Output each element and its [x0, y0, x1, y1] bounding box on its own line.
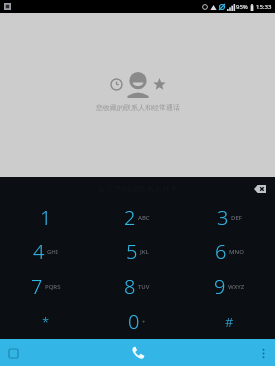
button[interactable]: 3 [183, 200, 275, 234]
staticText: 9 [214, 273, 226, 300]
staticText: + [142, 318, 146, 326]
button[interactable]: 6 [183, 234, 275, 269]
staticText: MNO [229, 248, 244, 256]
staticText: 0 [128, 308, 140, 335]
button[interactable]: 0 [91, 304, 183, 339]
staticText: DEF [231, 214, 242, 222]
staticText: 15:33 [256, 3, 272, 11]
button[interactable]: 4 [0, 234, 91, 269]
staticText: 6 [215, 238, 227, 265]
staticText: 7 [31, 273, 43, 300]
button[interactable]: 9 [183, 269, 275, 304]
staticText: 8 [124, 273, 136, 300]
staticText: 5 [126, 238, 138, 265]
staticText: 3 [217, 204, 229, 231]
button[interactable]: 8 [91, 269, 183, 304]
button[interactable]: More options [256, 346, 270, 360]
button[interactable]: 7 [0, 269, 91, 304]
button[interactable]: Keypad [6, 346, 20, 360]
staticText: PQRS [45, 283, 61, 291]
staticText: 2 [124, 204, 136, 231]
staticText: 4 [33, 238, 45, 265]
staticText: TUV [138, 283, 150, 291]
staticText: * [42, 313, 50, 331]
staticText: 您收藏的联系人和经常通话 [96, 103, 180, 112]
staticText: WXYZ [228, 283, 245, 291]
staticText: ABC [138, 214, 150, 222]
button[interactable]: # [183, 304, 275, 339]
staticText: 95% [236, 3, 248, 11]
button[interactable]: 2 [91, 200, 183, 234]
staticText: # [225, 313, 234, 331]
staticText: GHI [47, 248, 58, 256]
button[interactable]: Backspace [251, 181, 269, 197]
staticText: 1 [40, 204, 52, 231]
button[interactable]: * [0, 304, 91, 339]
button[interactable]: 1 [0, 200, 91, 234]
button[interactable]: 5 [91, 234, 183, 269]
button[interactable]: Call [121, 342, 155, 364]
staticText: JKL [140, 248, 149, 256]
